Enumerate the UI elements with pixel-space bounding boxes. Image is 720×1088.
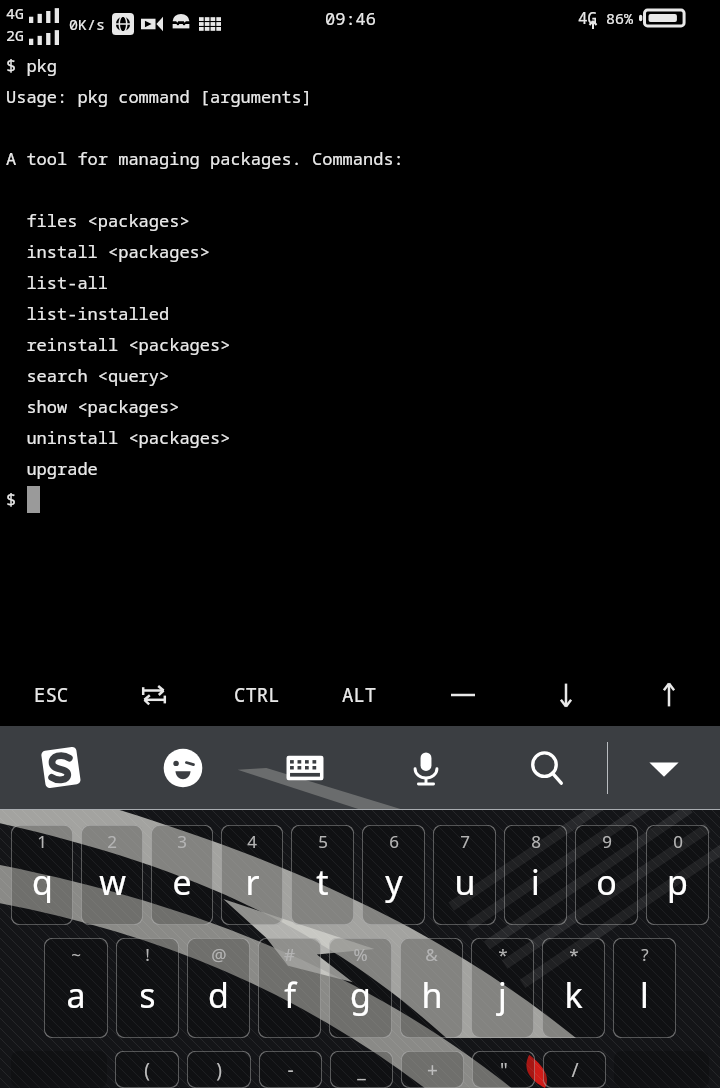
staticText: l [640, 972, 649, 1018]
staticText: a [66, 972, 86, 1018]
button[interactable]: - [259, 1051, 322, 1088]
staticText: A tool for managing packages. Commands: [6, 147, 404, 170]
staticText: + [427, 1057, 438, 1083]
staticText: s [139, 972, 156, 1018]
staticText: e [172, 859, 192, 905]
staticText: CTRL [234, 682, 280, 708]
staticText: / [571, 1057, 579, 1083]
staticText: h [421, 972, 443, 1018]
button[interactable]: / [543, 1051, 606, 1088]
button[interactable]: Shift [11, 1051, 107, 1088]
staticText: 1 [37, 830, 47, 853]
staticText: uninstall <packages> [6, 426, 231, 449]
staticText: ~ [71, 943, 81, 966]
staticText: $ pkg [6, 54, 57, 77]
staticText: 6 [389, 830, 399, 853]
staticText: 4 [247, 830, 257, 853]
staticText: 4G [6, 3, 25, 23]
staticText: 8 [531, 830, 541, 853]
staticText: f [284, 972, 296, 1018]
staticText: list-all [6, 271, 108, 294]
button[interactable]: Tab [102, 664, 205, 726]
button[interactable]: Keyboard [244, 726, 365, 810]
button[interactable]: 7 [433, 825, 496, 925]
staticText: 9 [602, 830, 612, 853]
staticText: 2G [6, 25, 25, 45]
staticText: 09:46 [325, 7, 376, 30]
button[interactable]: Sogou [0, 726, 122, 810]
staticText: - [287, 1057, 294, 1083]
staticText: w [99, 859, 126, 905]
button[interactable]: # [258, 938, 321, 1038]
button[interactable]: % [329, 938, 392, 1038]
staticText: @ [211, 943, 227, 966]
staticText: 0 [673, 830, 683, 853]
button[interactable]: Arrow down [514, 664, 617, 726]
staticText: " [500, 1057, 508, 1083]
button[interactable]: CTRL [205, 664, 308, 726]
staticText: 0K/s [69, 14, 106, 34]
button[interactable]: Backspace [614, 1051, 709, 1088]
staticText: 5 [318, 830, 328, 853]
button[interactable]: Voice [365, 726, 486, 810]
staticText: install <packages> [6, 240, 210, 263]
button[interactable]: 0 [646, 825, 709, 925]
button[interactable]: ALT [308, 664, 411, 726]
staticText: o [596, 859, 617, 905]
staticText: 3 [177, 830, 187, 853]
staticText: 4G [578, 7, 598, 29]
button[interactable]: 9 [575, 825, 638, 925]
staticText: u [454, 859, 476, 905]
button[interactable]: @ [187, 938, 250, 1038]
button[interactable]: + [401, 1051, 464, 1088]
button[interactable]: 1 [11, 825, 73, 925]
staticText: 7 [460, 830, 470, 853]
button[interactable]: 2 [81, 825, 143, 925]
button[interactable]: Hide keyboard [608, 726, 720, 810]
staticText: q [32, 859, 53, 905]
button[interactable]: ) [187, 1051, 251, 1088]
button[interactable]: ? [613, 938, 676, 1038]
staticText: ( [144, 1057, 150, 1083]
staticText: j [498, 972, 507, 1018]
button[interactable]: * [542, 938, 605, 1038]
staticText: p [667, 859, 688, 905]
staticText: i [531, 859, 540, 905]
staticText: ) [216, 1057, 222, 1083]
staticText: g [350, 972, 371, 1018]
button[interactable]: * [471, 938, 534, 1038]
staticText: files <packages> [6, 209, 190, 232]
staticText: reinstall <packages> [6, 333, 231, 356]
staticText: upgrade [6, 457, 98, 480]
button[interactable]: 4 [221, 825, 283, 925]
button[interactable]: ~ [44, 938, 108, 1038]
button[interactable]: Search [486, 726, 607, 810]
button[interactable]: Minus [411, 664, 514, 726]
button[interactable]: 5 [291, 825, 354, 925]
staticText: $ [6, 488, 27, 511]
button[interactable]: ESC [0, 664, 102, 726]
button[interactable]: 6 [362, 825, 425, 925]
button[interactable]: Arrow up [617, 664, 720, 726]
staticText: 2 [107, 830, 117, 853]
button[interactable]: _ [330, 1051, 393, 1088]
staticText: ? [641, 943, 649, 966]
staticText: 86% [606, 8, 634, 28]
staticText: ALT [342, 682, 377, 708]
button[interactable]: & [400, 938, 463, 1038]
button[interactable]: ! [116, 938, 179, 1038]
staticText: search <query> [6, 364, 170, 387]
button[interactable]: ( [115, 1051, 179, 1088]
staticText: # [284, 943, 295, 966]
button[interactable]: " [472, 1051, 535, 1088]
staticText: * [569, 943, 579, 966]
staticText: t [316, 859, 329, 905]
staticText: d [208, 972, 229, 1018]
button[interactable]: Emoji [122, 726, 244, 810]
button[interactable]: 3 [151, 825, 213, 925]
staticText: * [498, 943, 508, 966]
button[interactable]: 8 [504, 825, 567, 925]
staticText: & [425, 943, 438, 966]
staticText: % [353, 943, 368, 966]
staticText: k [564, 972, 583, 1018]
